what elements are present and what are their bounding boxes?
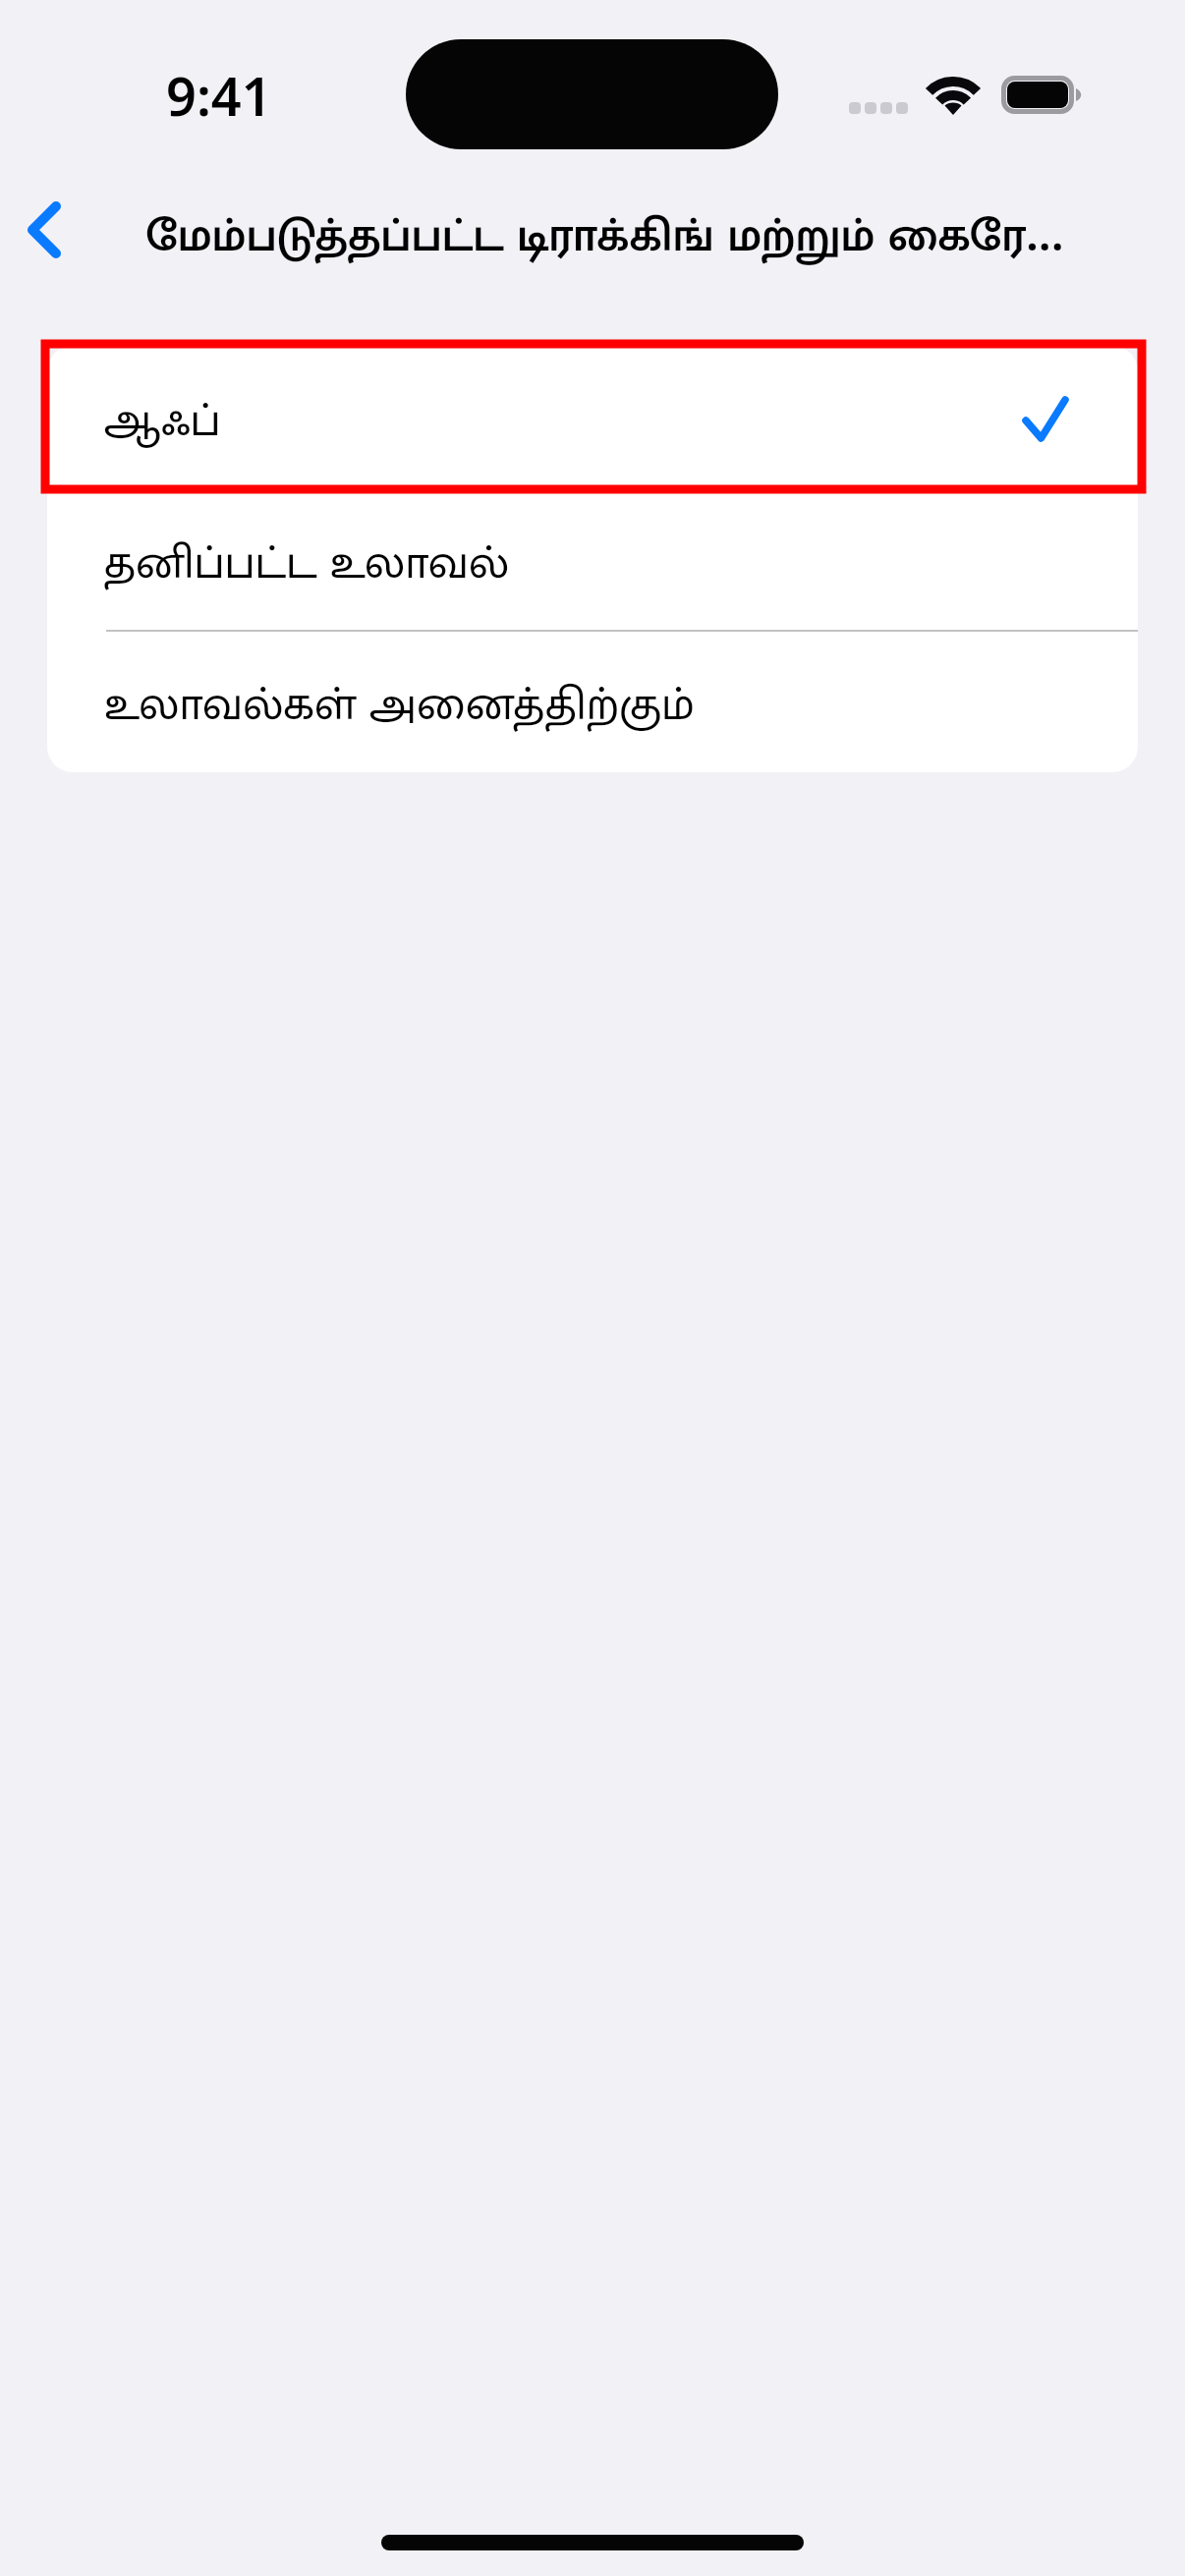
button[interactable]: Back	[0, 183, 94, 277]
staticText: உலாவல்கள் அனைத்திற்கும்	[104, 667, 695, 744]
staticText: மேம்படுத்தப்பட்ட டிராக்கிங் மற்றும் கைரே…	[145, 198, 1064, 275]
button[interactable]: தனிப்பட்ட உலாவல்	[47, 488, 1138, 631]
button[interactable]: உலாவல்கள் அனைத்திற்கும்	[47, 631, 1138, 772]
staticText: 9:41	[166, 59, 272, 128]
staticText: ஆஃப்	[104, 383, 221, 460]
button[interactable]: ஆஃப்	[47, 346, 1138, 488]
staticText: தனிப்பட்ட உலாவல்	[104, 526, 510, 602]
